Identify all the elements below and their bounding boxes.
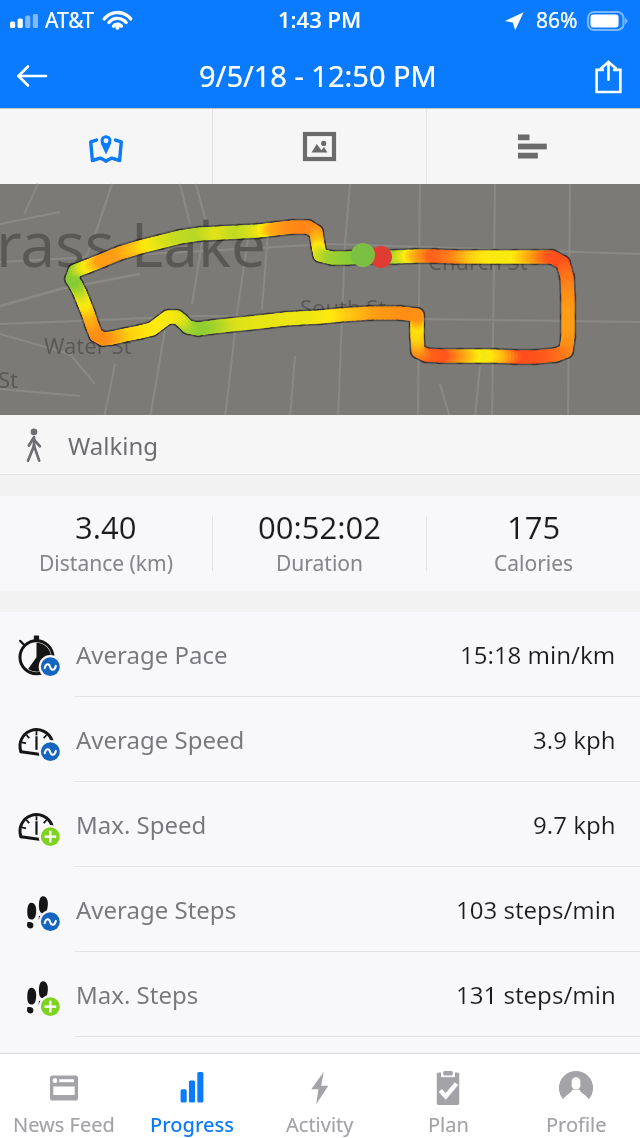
button[interactable]: Share [576, 44, 640, 108]
staticText: Church St [428, 246, 528, 276]
staticText: Average Steps [76, 893, 237, 926]
staticText: South St [300, 292, 387, 322]
staticText: Duration [276, 549, 364, 578]
button[interactable]: Max. Speed [0, 782, 640, 867]
button[interactable]: Activity [256, 1054, 384, 1138]
button[interactable]: Charts [427, 109, 640, 184]
staticText: 1:43 PM [278, 4, 362, 34]
staticText: Distance (km) [39, 549, 173, 578]
staticText: rass Lake [0, 201, 267, 285]
button[interactable]: Progress [128, 1054, 256, 1138]
staticText: St [0, 364, 19, 394]
staticText: 00:52:02 [258, 506, 382, 548]
staticText: News Feed [13, 1111, 115, 1138]
staticText: Calories [494, 549, 574, 578]
staticText: Max. Steps [76, 978, 199, 1011]
staticText: Activity [286, 1111, 354, 1138]
staticText: 103 steps/min [456, 893, 616, 926]
staticText: 9.7 kph [533, 808, 616, 841]
staticText: Progress [150, 1111, 234, 1138]
staticText: Profile [546, 1111, 607, 1138]
button[interactable]: Average Speed [0, 697, 640, 782]
staticText: 15:18 min/km [460, 638, 616, 671]
button[interactable]: News Feed [0, 1054, 128, 1138]
button[interactable]: 00:52:02 [213, 508, 426, 580]
staticText: 131 steps/min [456, 978, 616, 1011]
staticText: 3.9 kph [533, 723, 616, 756]
button[interactable]: 175 [427, 508, 640, 580]
staticText: 3.40 [75, 506, 137, 548]
button[interactable]: Profile [512, 1054, 640, 1138]
button[interactable]: Average Pace [0, 612, 640, 697]
staticText: Max. Speed [76, 808, 207, 841]
staticText: AT&T [45, 6, 94, 35]
button[interactable]: Max. Steps [0, 952, 640, 1037]
staticText: 9/5/18 - 12:50 PM [199, 56, 437, 95]
button[interactable]: 3.40 [0, 508, 212, 580]
staticText: Water St [44, 330, 132, 360]
staticText: Average Pace [76, 638, 228, 671]
staticText: Average Speed [76, 723, 245, 756]
staticText: Walking [68, 429, 159, 462]
staticText: Plan [428, 1111, 469, 1138]
staticText: 86% [536, 6, 578, 35]
staticText: 175 [507, 506, 561, 548]
button[interactable]: Average Steps [0, 867, 640, 952]
button[interactable]: Photos [213, 109, 426, 184]
button[interactable]: Map [0, 109, 212, 184]
button[interactable]: Back [0, 44, 64, 108]
button[interactable]: Plan [384, 1054, 512, 1138]
